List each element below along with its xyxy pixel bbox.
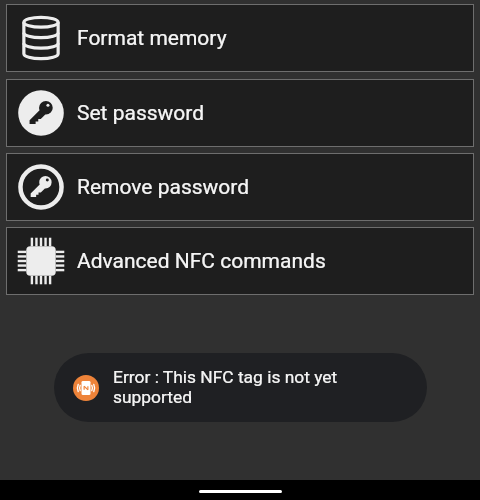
staticText: Remove password [77, 175, 250, 200]
staticText: Set password [77, 101, 205, 126]
staticText: Error : This NFC tag is not yet supporte… [113, 367, 343, 408]
button[interactable]: Advanced NFC commands [6, 227, 474, 295]
button[interactable]: Set password [6, 79, 474, 147]
staticText: Advanced NFC commands [77, 249, 326, 274]
staticText: Format memory [77, 26, 227, 51]
button[interactable]: NFC [54, 353, 427, 422]
other: NFC [73, 375, 99, 401]
button[interactable]: Format memory [6, 4, 474, 72]
button[interactable]: Remove password [6, 153, 474, 221]
